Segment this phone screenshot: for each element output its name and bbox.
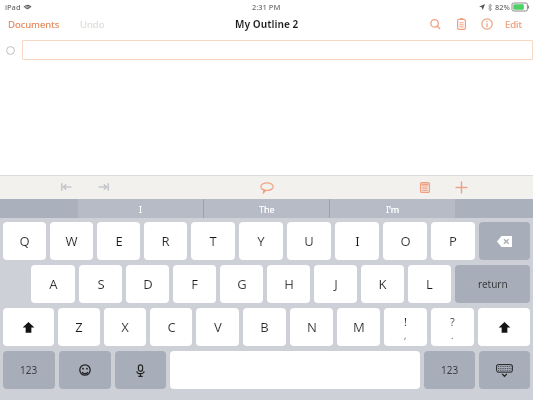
- button[interactable]: Y: [239, 222, 283, 260]
- staticText: D: [143, 275, 153, 293]
- button[interactable]: Search: [425, 14, 445, 34]
- button[interactable]: I: [78, 199, 203, 218]
- staticText: ,: [404, 329, 407, 341]
- button[interactable]: Undo: [78, 15, 107, 34]
- button[interactable]: O: [383, 222, 427, 260]
- button[interactable]: X: [104, 308, 146, 346]
- staticText: X: [121, 318, 129, 336]
- staticText: I: [139, 203, 143, 215]
- button[interactable]: H: [267, 265, 310, 303]
- staticText: My Outline 2: [235, 17, 299, 31]
- staticText: N: [307, 318, 317, 336]
- button[interactable]: L: [408, 265, 451, 303]
- button[interactable]: Note: [415, 177, 435, 197]
- button[interactable]: U: [287, 222, 331, 260]
- staticText: U: [304, 232, 314, 250]
- staticText: E: [115, 232, 123, 250]
- staticText: Z: [75, 318, 83, 336]
- staticText: A: [49, 275, 58, 293]
- staticText: Documents: [8, 18, 60, 31]
- staticText: return: [478, 277, 508, 291]
- button[interactable]: [59, 351, 111, 389]
- button[interactable]: J: [314, 265, 357, 303]
- staticText: G: [237, 275, 247, 293]
- button[interactable]: 123: [424, 351, 475, 389]
- button[interactable]: [479, 351, 530, 389]
- staticText: 123: [20, 363, 38, 377]
- button[interactable]: The: [204, 199, 329, 218]
- button[interactable]: Documents: [6, 15, 62, 34]
- staticText: V: [214, 318, 222, 336]
- staticText: H: [284, 275, 294, 293]
- staticText: C: [167, 318, 176, 336]
- staticText: iPad: [5, 2, 21, 12]
- staticText: !: [404, 314, 407, 329]
- button[interactable]: I'm: [330, 199, 455, 218]
- button[interactable]: !: [384, 308, 427, 346]
- staticText: Undo: [80, 18, 105, 31]
- staticText: 82%: [495, 2, 510, 12]
- button[interactable]: P: [431, 222, 475, 260]
- button[interactable]: V: [196, 308, 239, 346]
- button[interactable]: 123: [3, 351, 55, 389]
- staticText: .: [451, 329, 454, 341]
- button[interactable]: Comment: [256, 176, 278, 198]
- button[interactable]: Shift: [3, 308, 54, 346]
- staticText: Y: [257, 232, 265, 250]
- button[interactable]: G: [220, 265, 263, 303]
- button[interactable]: M: [337, 308, 380, 346]
- button[interactable]: Add row: [451, 177, 471, 197]
- button[interactable]: Indent: [93, 177, 113, 197]
- staticText: K: [378, 275, 387, 293]
- button[interactable]: Shift: [478, 308, 530, 346]
- button[interactable]: Outdent: [56, 177, 76, 197]
- button[interactable]: W: [50, 222, 93, 260]
- staticText: S: [97, 275, 105, 293]
- staticText: M: [353, 318, 365, 336]
- staticText: P: [449, 232, 457, 250]
- staticText: ?: [450, 314, 455, 329]
- button[interactable]: F: [173, 265, 216, 303]
- staticText: T: [209, 232, 217, 250]
- staticText: I'm: [386, 203, 400, 215]
- button[interactable]: Document actions: [451, 14, 471, 34]
- staticText: The: [259, 203, 275, 215]
- staticText: L: [426, 275, 433, 293]
- button[interactable]: [22, 40, 533, 60]
- button[interactable]: B: [243, 308, 286, 346]
- button[interactable]: I: [335, 222, 379, 260]
- button[interactable]: T: [191, 222, 235, 260]
- button[interactable]: [115, 351, 166, 389]
- staticText: 123: [441, 363, 459, 377]
- staticText: Q: [19, 232, 30, 250]
- staticText: O: [400, 232, 411, 250]
- button[interactable]: ?: [431, 308, 474, 346]
- button[interactable]: Info: [477, 14, 497, 34]
- button[interactable]: Edit: [502, 15, 526, 34]
- staticText: 2:31 PM: [252, 2, 281, 12]
- staticText: W: [65, 232, 78, 250]
- staticText: F: [191, 275, 198, 293]
- button[interactable]: S: [79, 265, 122, 303]
- button[interactable]: A: [31, 265, 75, 303]
- button[interactable]: Z: [58, 308, 100, 346]
- button[interactable]: E: [97, 222, 140, 260]
- staticText: I: [355, 232, 360, 250]
- staticText: R: [161, 232, 170, 250]
- staticText: B: [260, 318, 269, 336]
- button[interactable]: C: [150, 308, 192, 346]
- button[interactable]: Q: [3, 222, 46, 260]
- button[interactable]: K: [361, 265, 404, 303]
- button[interactable]: N: [290, 308, 333, 346]
- button[interactable]: [479, 222, 530, 260]
- button[interactable]: D: [126, 265, 169, 303]
- staticText: J: [334, 275, 338, 293]
- button[interactable]: R: [144, 222, 187, 260]
- button[interactable]: return: [455, 265, 530, 303]
- staticText: Edit: [505, 18, 523, 31]
